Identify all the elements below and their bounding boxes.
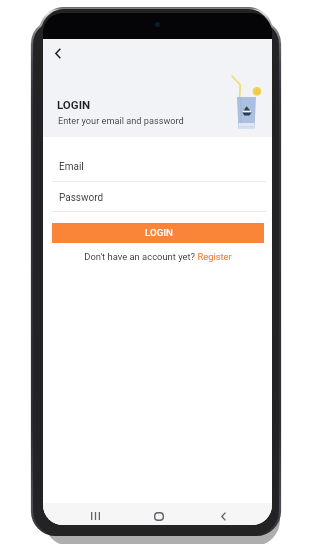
button[interactable]: Back	[44, 39, 72, 67]
button[interactable]: LOGIN	[52, 223, 264, 243]
staticText: LOGIN	[57, 98, 91, 111]
button[interactable]: Home	[146, 503, 172, 525]
button[interactable]: Back	[210, 503, 236, 525]
button[interactable]	[43, 151, 272, 182]
staticText: Password	[59, 192, 104, 204]
button[interactable]	[43, 182, 272, 212]
button[interactable]: Recent apps	[82, 503, 108, 525]
button[interactable]: Don't have an account yet? Register	[43, 249, 272, 263]
staticText: Email	[59, 161, 84, 173]
staticText: Enter your email and password	[58, 115, 184, 126]
staticText: LOGIN	[145, 227, 173, 238]
staticText: Don't have an account yet? Register	[84, 251, 232, 262]
